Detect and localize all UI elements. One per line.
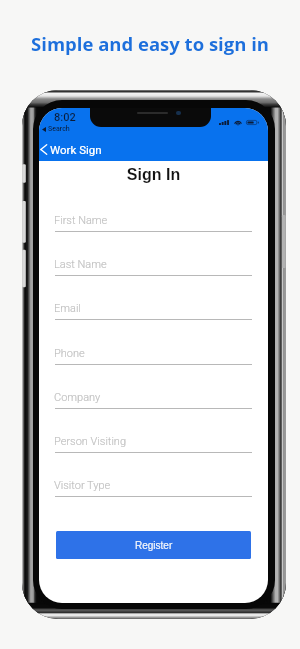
staticText: Search <box>48 125 70 133</box>
staticText: Last Name <box>54 258 107 271</box>
button[interactable]: Visitor Type <box>39 466 268 497</box>
staticText: Company <box>54 391 101 404</box>
staticText: First Name <box>54 214 108 227</box>
staticText: Register <box>135 540 173 551</box>
staticText: Work Sign <box>50 143 102 156</box>
button[interactable]: Phone <box>39 334 268 365</box>
staticText: 8:02 <box>54 111 76 124</box>
button[interactable]: Last Name <box>39 245 268 276</box>
staticText: Visitor Type <box>54 479 111 492</box>
staticText: Sign In <box>39 166 268 184</box>
staticText: Person Visiting <box>54 435 127 448</box>
button[interactable]: Company <box>39 378 268 409</box>
staticText: Phone <box>54 347 85 360</box>
button[interactable]: First Name <box>39 201 268 232</box>
button[interactable]: Back to Search <box>42 125 70 133</box>
staticText: Simple and easy to sign in <box>0 31 300 56</box>
button[interactable]: Work Sign <box>39 139 108 160</box>
button[interactable]: Email <box>39 289 268 320</box>
button[interactable]: Register <box>56 531 251 559</box>
button[interactable]: Person Visiting <box>39 422 268 453</box>
staticText: Email <box>54 302 81 315</box>
